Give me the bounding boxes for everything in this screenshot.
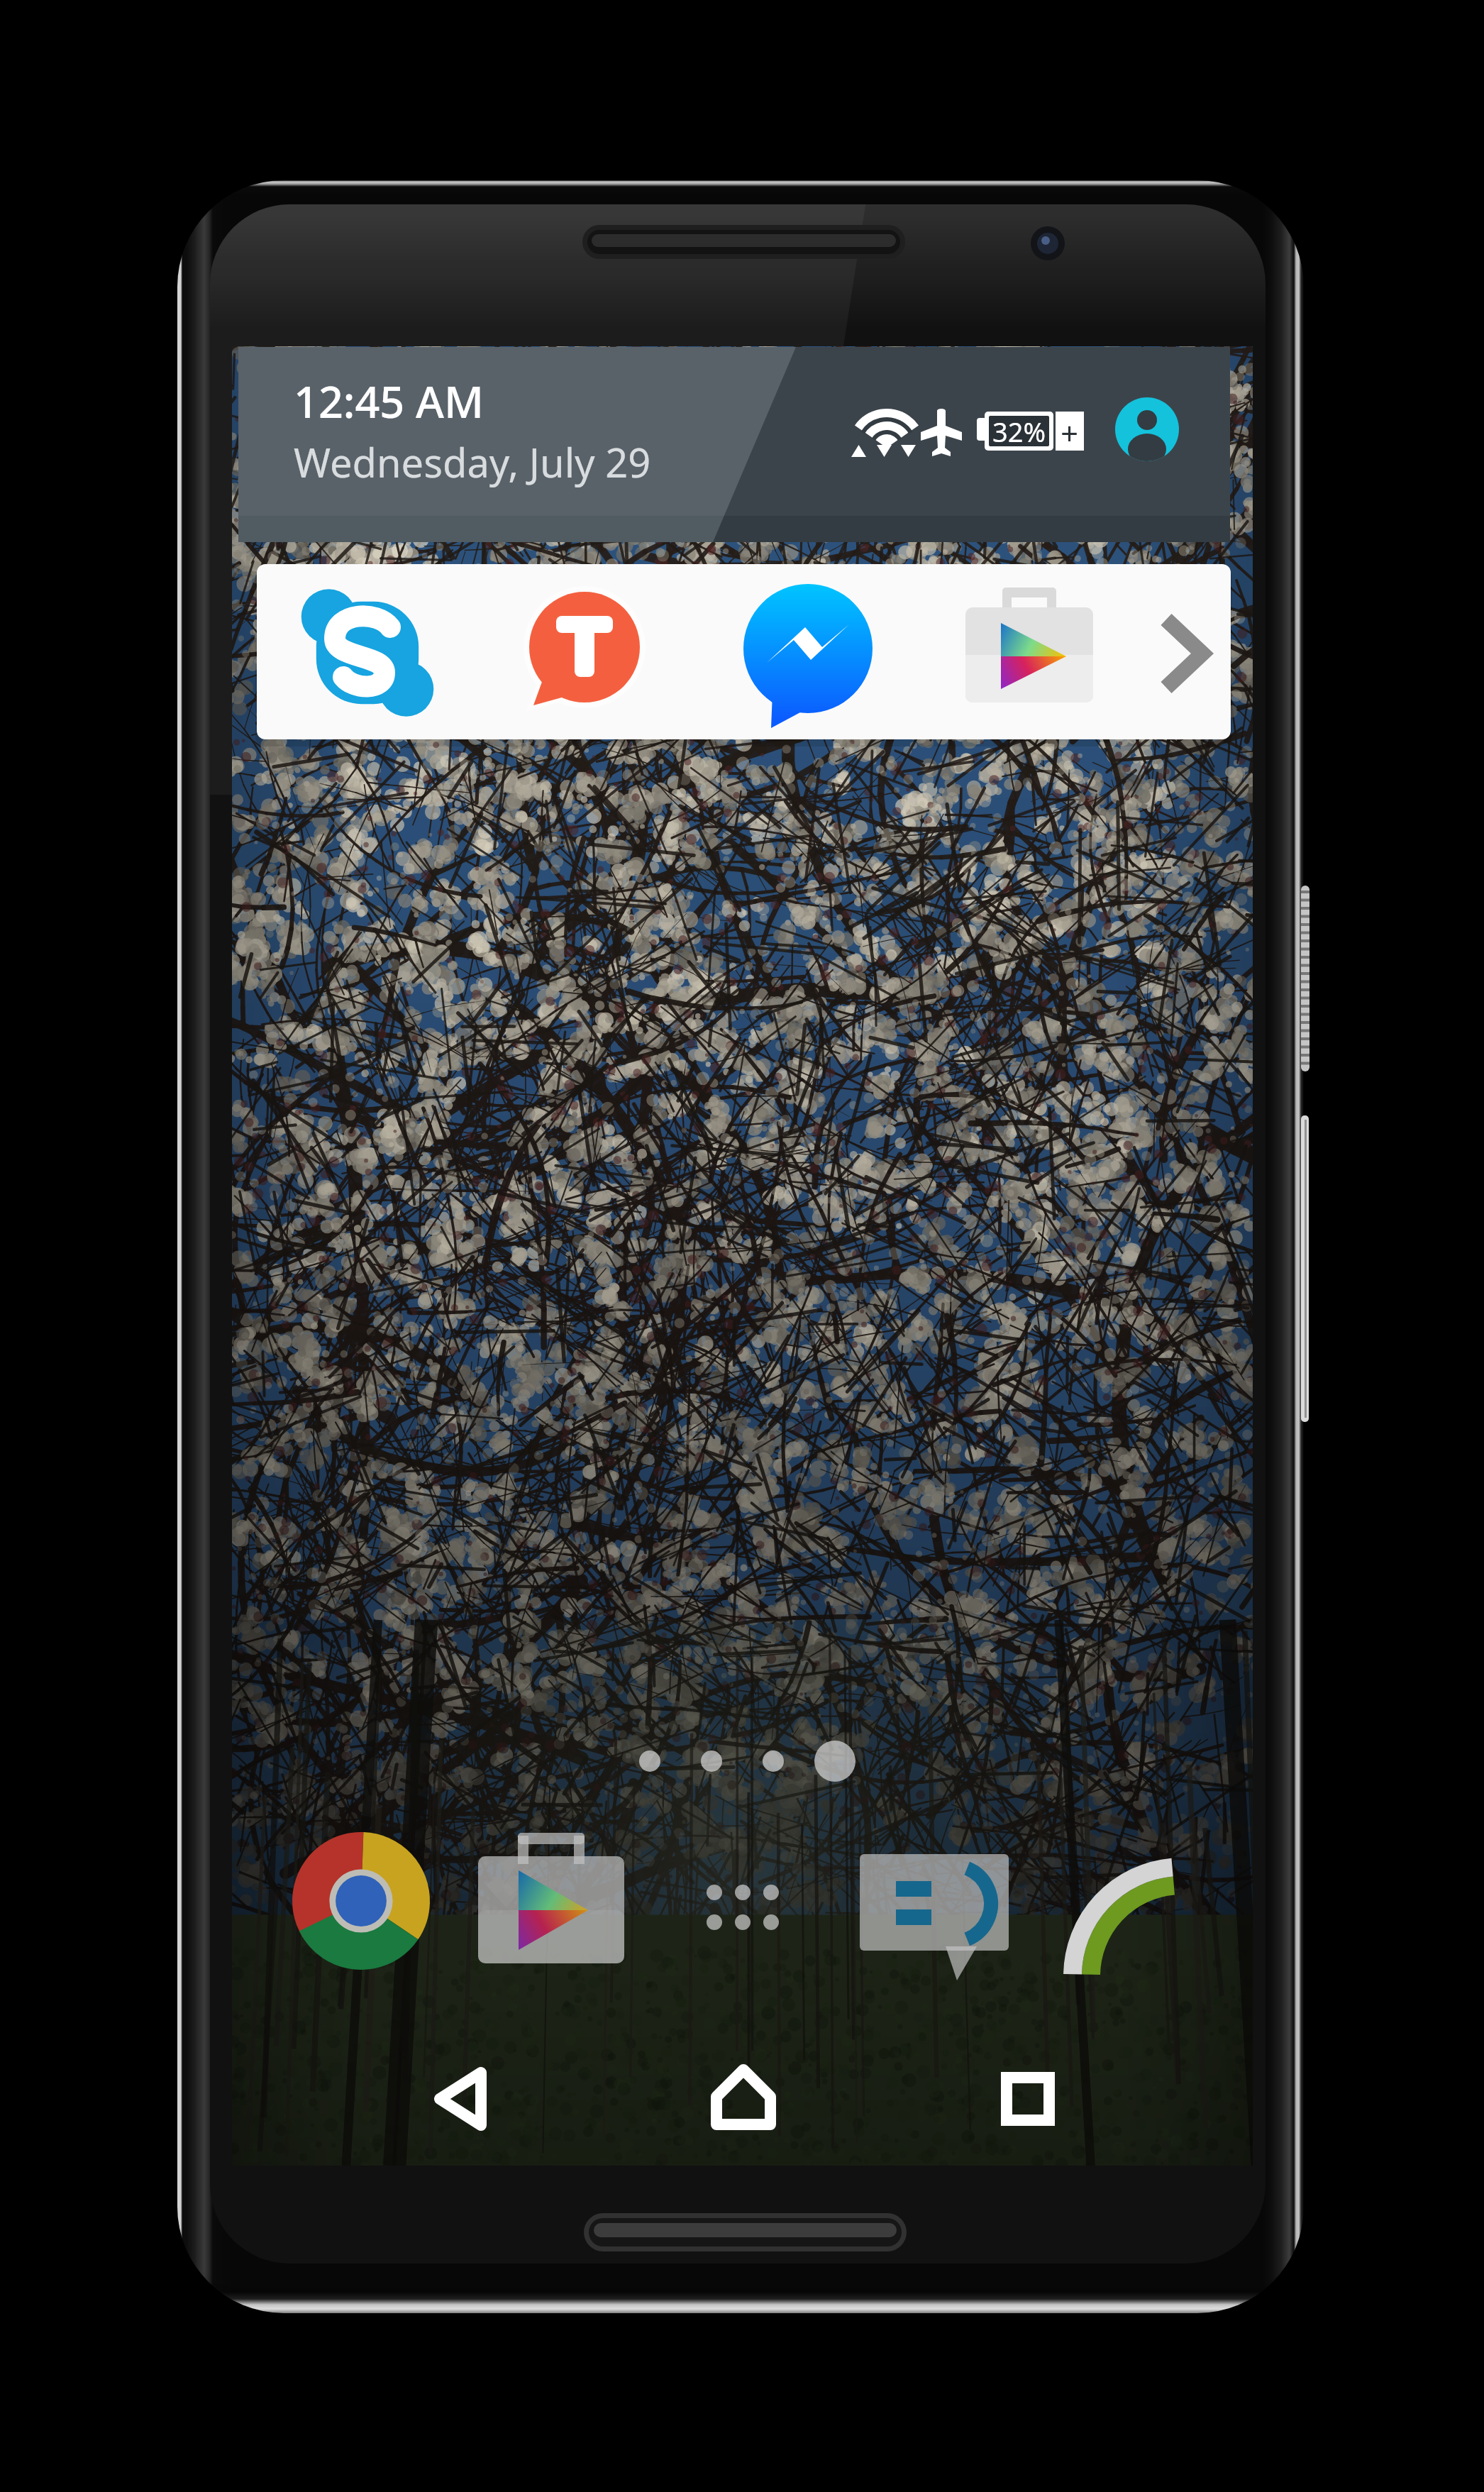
button[interactable]: Back <box>404 2051 518 2150</box>
button[interactable]: Recent apps <box>978 2051 1078 2150</box>
button[interactable]: Chrome <box>284 1824 437 1977</box>
staticText: 12:45 AM <box>294 372 484 431</box>
button[interactable]: Play Store <box>962 573 1097 731</box>
button[interactable]: Wi-Fi <box>844 397 912 465</box>
button[interactable]: More apps <box>1145 596 1224 710</box>
button[interactable]: Battery 32 percent, charging <box>972 404 1088 458</box>
button[interactable]: All apps <box>694 1845 793 1970</box>
button[interactable]: Clock and date <box>294 372 691 505</box>
button[interactable]: Messaging <box>855 1824 1016 1983</box>
button[interactable]: Tango <box>522 573 648 731</box>
button[interactable]: User profile <box>1114 396 1182 464</box>
button[interactable]: Phone <box>1057 1831 1220 1990</box>
button[interactable]: Messenger <box>743 573 871 731</box>
staticText: + <box>1061 412 1079 451</box>
staticText: Wednesday, July 29 <box>294 435 651 489</box>
staticText: 32% <box>992 413 1046 450</box>
button[interactable]: Page indicator <box>630 1738 857 1785</box>
button[interactable]: Airplane mode <box>915 397 968 465</box>
button[interactable]: Play Store <box>472 1824 630 1977</box>
button[interactable]: Skype <box>305 573 431 731</box>
button[interactable]: Home <box>688 2051 799 2150</box>
